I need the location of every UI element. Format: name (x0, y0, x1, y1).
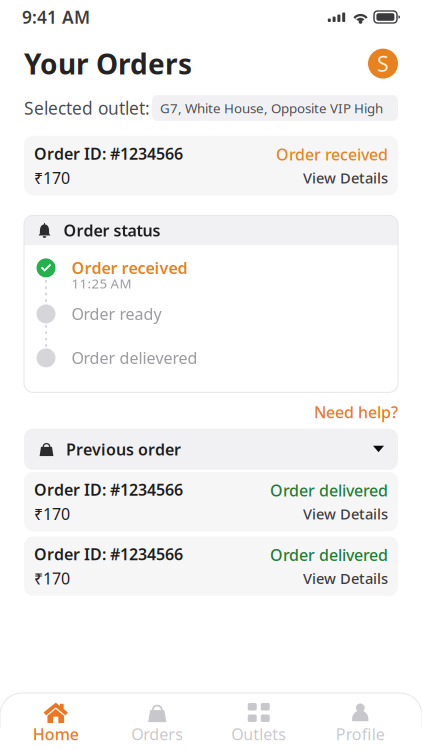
staticText: Your Orders (24, 45, 192, 82)
staticText: ₹170 (34, 167, 70, 188)
staticText: View Details (303, 168, 388, 187)
staticText: View Details (303, 568, 388, 588)
staticText: G7, White House, Opposite VIP High (160, 99, 383, 117)
button[interactable]: Need help? (314, 397, 398, 427)
staticText: Order delievered (71, 347, 197, 368)
button[interactable]: Order ID: #1234566 (24, 536, 398, 596)
button[interactable]: Profile (309, 693, 411, 750)
staticText: Outlets (231, 723, 286, 745)
staticText: Order status (63, 220, 160, 241)
staticText: 11:25 AM (71, 274, 131, 292)
staticText: Order received (276, 144, 388, 165)
button[interactable]: Orders (106, 693, 208, 750)
staticText: View Details (303, 504, 388, 523)
button[interactable]: Outlets (208, 693, 309, 750)
staticText: S (377, 49, 389, 78)
staticText: Previous order (66, 439, 181, 460)
button[interactable]: Home (5, 693, 106, 750)
button[interactable]: Previous order (24, 429, 398, 470)
staticText: ₹170 (34, 503, 70, 524)
staticText: Order ready (71, 303, 161, 324)
button[interactable]: Order ID: #1234566 (24, 136, 398, 195)
staticText: 9:41 AM (22, 5, 90, 28)
staticText: Order delivered (270, 480, 388, 501)
staticText: Need help? (314, 401, 398, 423)
button[interactable]: Order ID: #1234566 (24, 472, 398, 531)
staticText: Profile (336, 723, 385, 745)
staticText: Home (33, 723, 79, 745)
staticText: Order ID: #1234566 (34, 143, 183, 164)
staticText: ₹170 (34, 568, 70, 589)
staticText: Order ID: #1234566 (34, 543, 183, 565)
button[interactable]: G7, White House, Opposite VIP High (152, 95, 398, 121)
staticText: Selected outlet: (24, 96, 150, 119)
staticText: Order delivered (270, 544, 388, 565)
staticText: Orders (131, 723, 183, 745)
staticText: Order ID: #1234566 (34, 479, 183, 500)
staticText: Order received (71, 257, 187, 278)
button[interactable]: Account (368, 49, 398, 79)
